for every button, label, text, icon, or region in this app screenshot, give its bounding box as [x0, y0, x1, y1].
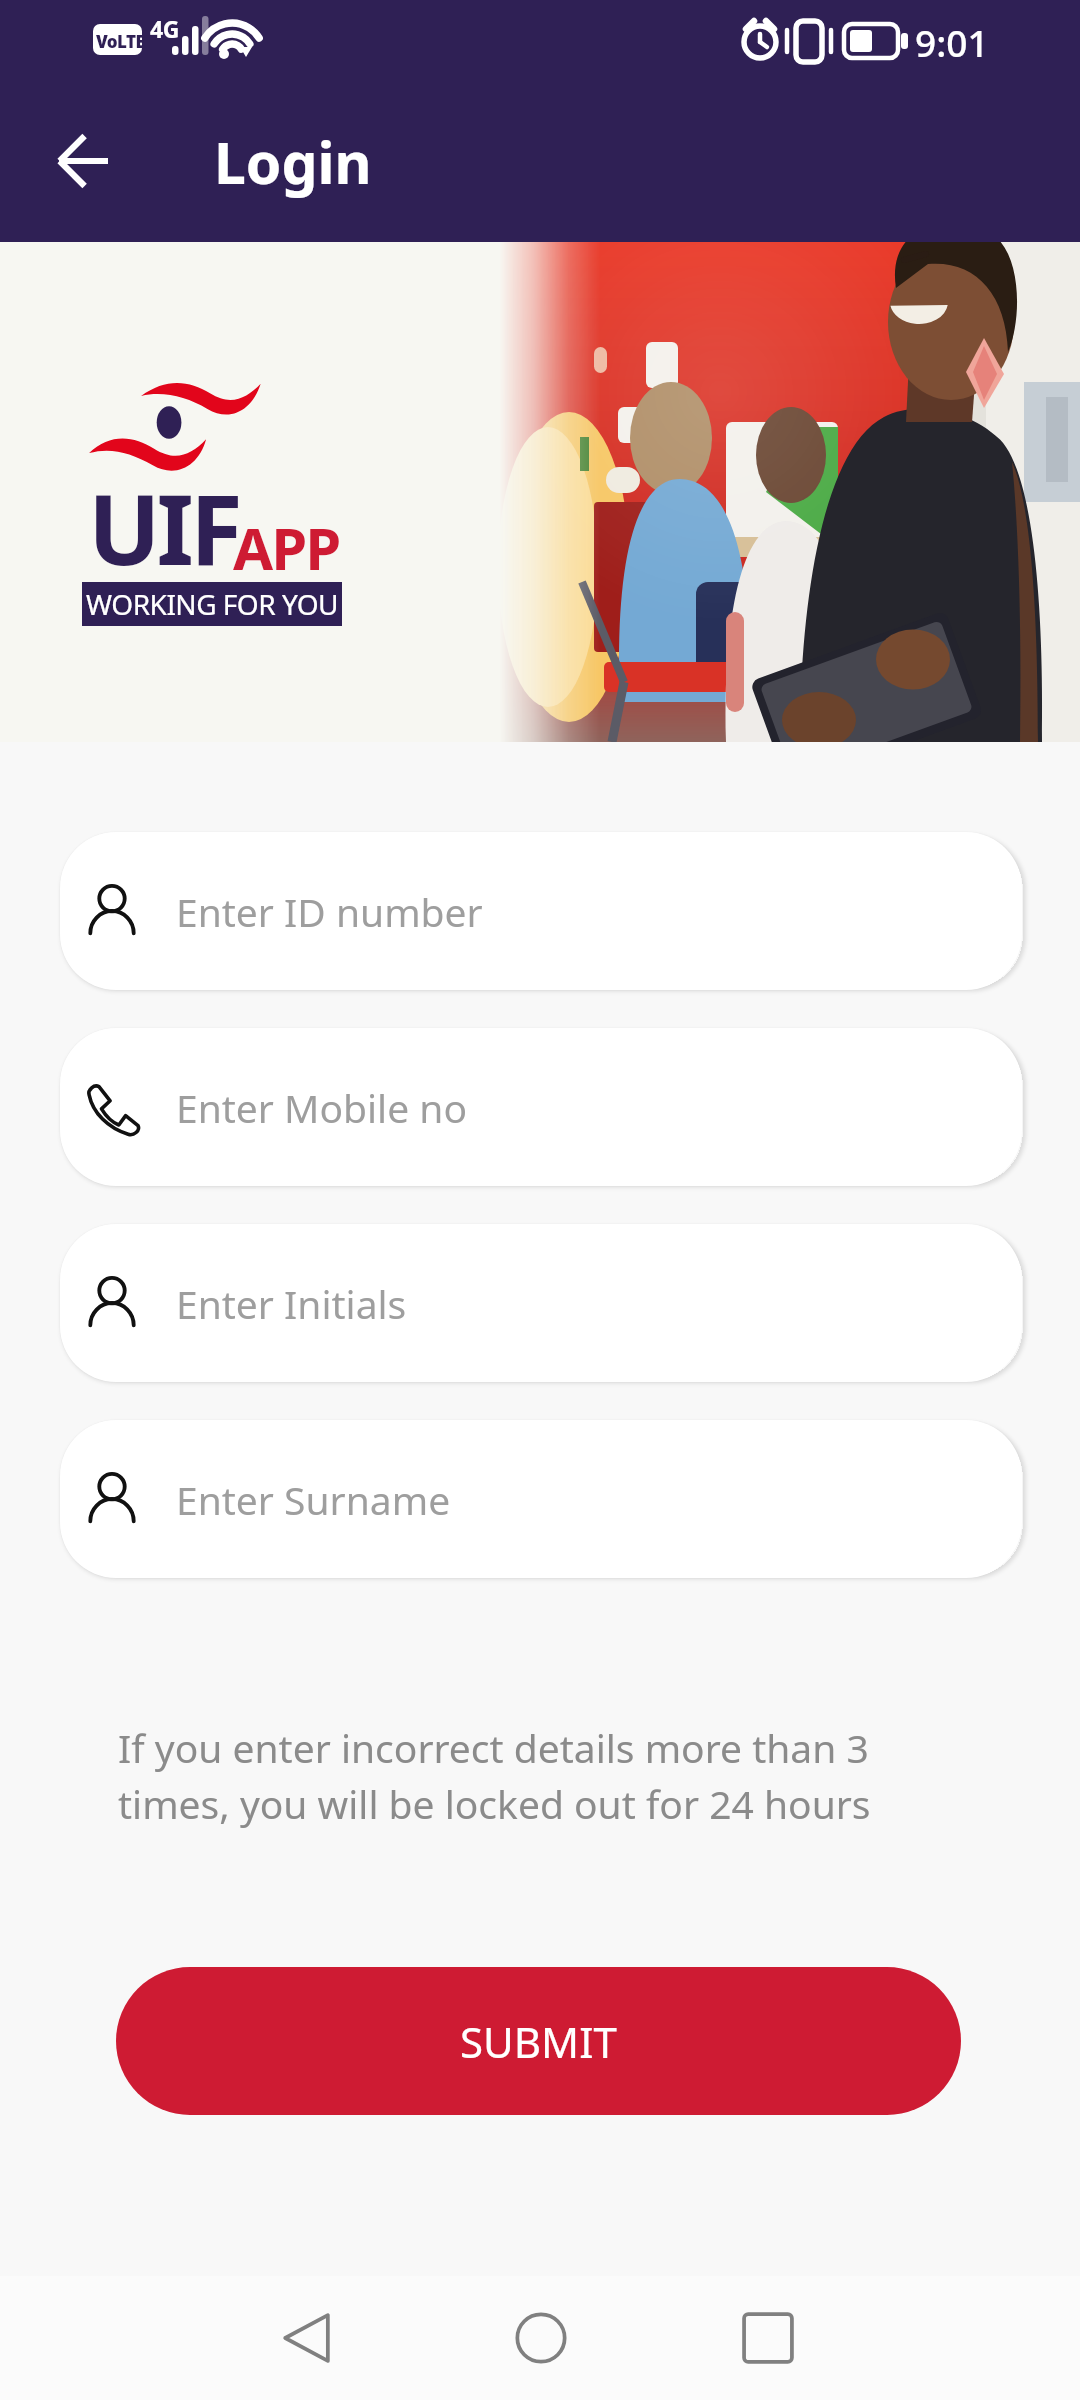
staticText: Enter ID number — [176, 885, 483, 938]
staticText: Login — [214, 123, 372, 201]
staticText: 9:01 — [915, 17, 989, 67]
button[interactable]: Enter Mobile no — [60, 1028, 1022, 1186]
staticText: Enter Surname — [176, 1473, 451, 1526]
staticText: Enter Mobile no — [176, 1081, 468, 1134]
button[interactable]: Back — [258, 2290, 354, 2386]
staticText: UIF — [88, 462, 239, 593]
staticText: 4G — [150, 13, 179, 44]
staticText: If you enter incorrect details more than… — [118, 1721, 908, 1830]
button[interactable]: Back — [37, 116, 127, 206]
button[interactable]: SUBMIT — [116, 1967, 961, 2115]
button[interactable]: Home — [493, 2290, 589, 2386]
button[interactable]: Recents — [720, 2290, 816, 2386]
button[interactable]: Enter ID number — [60, 832, 1022, 990]
staticText: VoLTE — [96, 30, 145, 53]
staticText: WORKING FOR YOU — [86, 585, 339, 623]
staticText: APP — [233, 508, 340, 587]
staticText: SUBMIT — [460, 2013, 617, 2070]
staticText: Enter Initials — [176, 1277, 407, 1330]
button[interactable]: Enter Initials — [60, 1224, 1022, 1382]
button[interactable]: Enter Surname — [60, 1420, 1022, 1578]
